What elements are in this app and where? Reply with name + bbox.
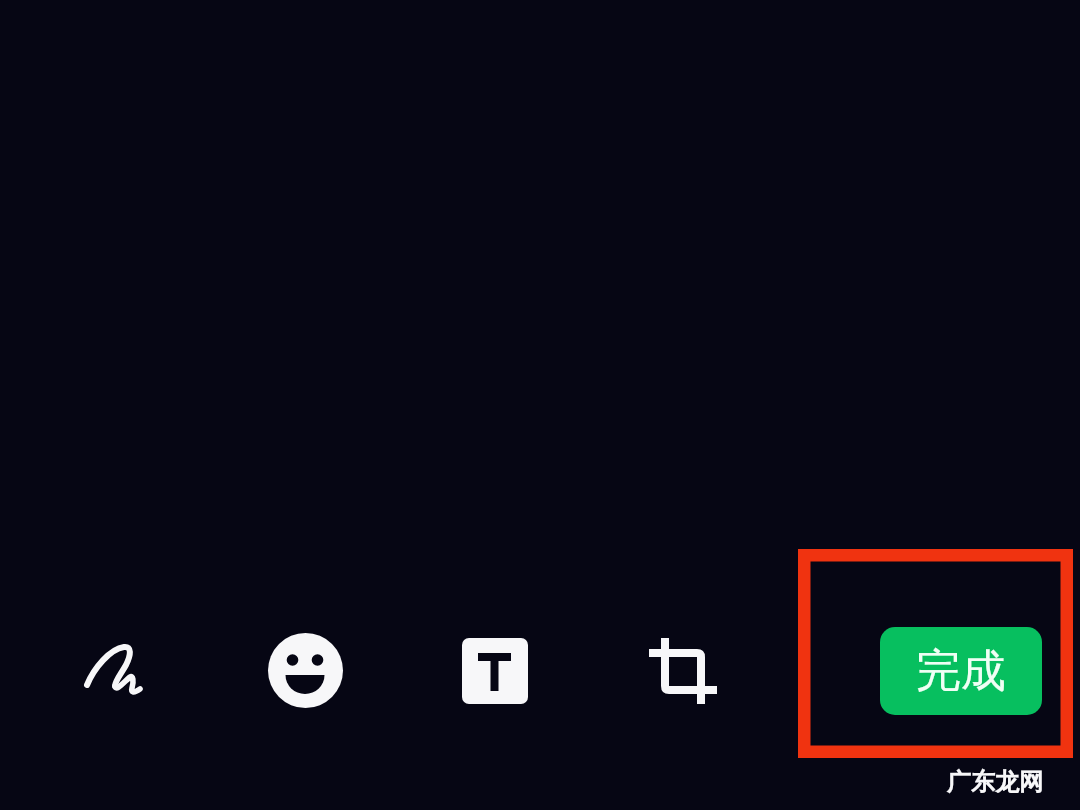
staticText: 广东龙网 (947, 767, 1043, 797)
button[interactable]: Crop (645, 634, 723, 712)
staticText: 完成 (916, 643, 1006, 700)
button[interactable]: Text (462, 638, 528, 704)
button[interactable]: Sticker (268, 633, 343, 708)
button[interactable]: Draw (82, 640, 150, 708)
button[interactable]: 完成 (880, 627, 1042, 715)
